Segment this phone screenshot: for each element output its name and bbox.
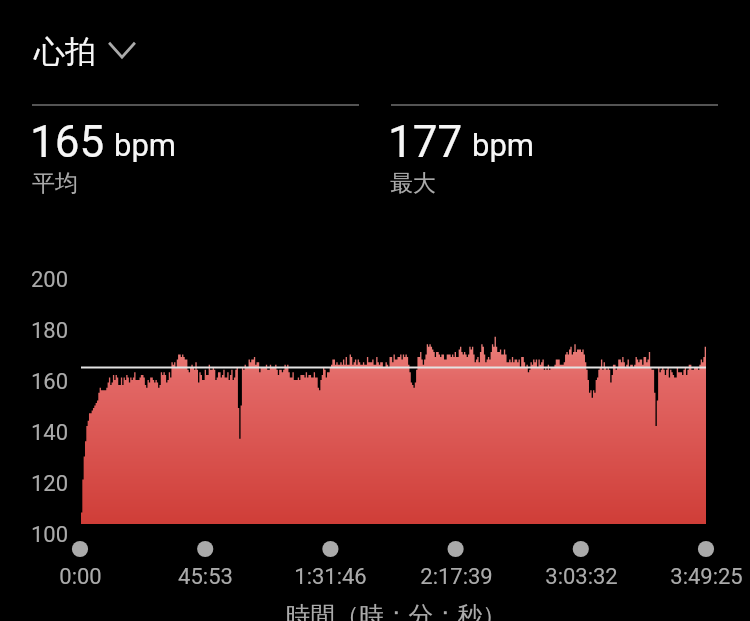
button[interactable]: 心拍 xyxy=(34,32,139,71)
staticText: 45:53 xyxy=(178,564,233,590)
staticText: 心拍 xyxy=(34,32,96,71)
staticText: bpm xyxy=(114,127,176,163)
staticText: 最大 xyxy=(390,169,436,198)
staticText: 1:31:46 xyxy=(294,564,367,590)
staticText: 0:00 xyxy=(59,564,102,590)
staticText: 120 xyxy=(30,471,68,497)
staticText: 2:17:39 xyxy=(420,564,493,590)
staticText: 160 xyxy=(30,369,68,395)
staticText: 3:49:25 xyxy=(670,564,743,590)
button[interactable]: 177 xyxy=(388,116,534,168)
staticText: 140 xyxy=(30,420,68,446)
staticText: 177 xyxy=(388,116,463,168)
staticText: bpm xyxy=(472,127,534,163)
staticText: 3:03:32 xyxy=(545,564,618,590)
staticText: 180 xyxy=(30,318,68,344)
staticText: 平均 xyxy=(32,169,78,198)
staticText: 時間（時：分：秒） xyxy=(286,600,507,621)
staticText: 200 xyxy=(30,267,68,293)
staticText: 165 xyxy=(30,116,105,168)
other: Change metric xyxy=(105,33,139,67)
button[interactable]: 165 xyxy=(30,116,176,168)
staticText: 100 xyxy=(30,522,68,548)
